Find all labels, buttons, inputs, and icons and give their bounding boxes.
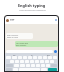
staticText: How is it going? xyxy=(7,34,19,36)
button[interactable]: Yes! Almost done xyxy=(16,42,57,46)
button[interactable]: Send xyxy=(54,50,57,53)
staticText: Ready for today xyxy=(7,36,19,38)
button[interactable]: to xyxy=(23,53,40,56)
button[interactable]: and xyxy=(40,53,57,56)
staticText: with the slides xyxy=(16,44,27,46)
staticText: Yes! Almost done xyxy=(16,42,29,44)
button[interactable]: Anna xyxy=(6,16,57,24)
staticText: Smart keyboard with suggestions xyxy=(19,9,46,11)
staticText: English typing xyxy=(18,3,46,8)
button[interactable]: How is it going? xyxy=(7,34,32,38)
staticText: and xyxy=(47,54,50,56)
staticText: Anna xyxy=(10,18,15,20)
staticText: to xyxy=(31,54,33,56)
staticText: online xyxy=(10,20,14,22)
button[interactable] xyxy=(48,68,57,71)
button[interactable]: the xyxy=(6,53,23,56)
staticText: the xyxy=(13,54,16,56)
